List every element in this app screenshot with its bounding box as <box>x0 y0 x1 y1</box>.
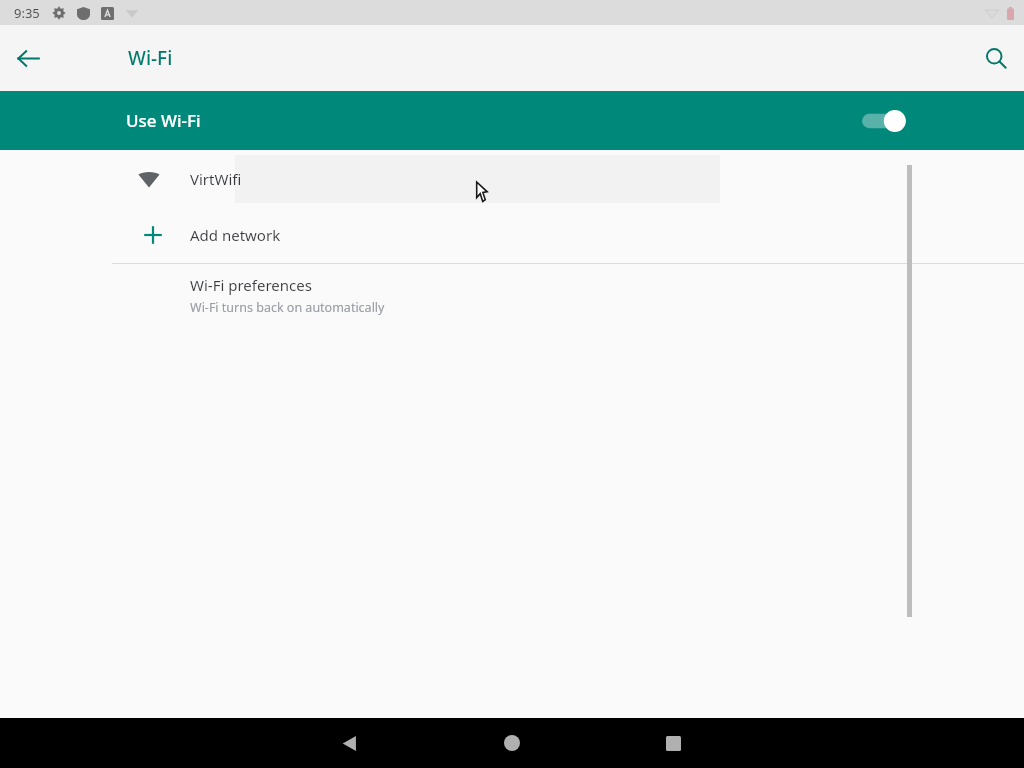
button[interactable]: Add network <box>0 208 1024 262</box>
staticText: Wi-Fi turns back on automatically <box>190 299 385 316</box>
button[interactable]: Recent apps <box>642 718 704 768</box>
button[interactable]: Back <box>8 38 48 78</box>
button[interactable]: Wi-Fi preferences <box>0 264 1024 326</box>
staticText: Wi-Fi <box>128 45 173 71</box>
staticText: 9:35 <box>14 4 40 22</box>
button[interactable]: Home <box>481 718 543 768</box>
staticText: Use Wi-Fi <box>126 109 201 132</box>
button[interactable]: Back <box>318 718 380 768</box>
staticText: VirtWifi <box>190 169 242 189</box>
staticText: Add network <box>190 225 281 245</box>
button[interactable]: VirtWifi <box>0 150 1024 208</box>
button[interactable]: Search <box>974 36 1018 80</box>
staticText: Wi-Fi preferences <box>190 275 312 295</box>
button[interactable]: Use Wi-Fi <box>0 91 1024 150</box>
